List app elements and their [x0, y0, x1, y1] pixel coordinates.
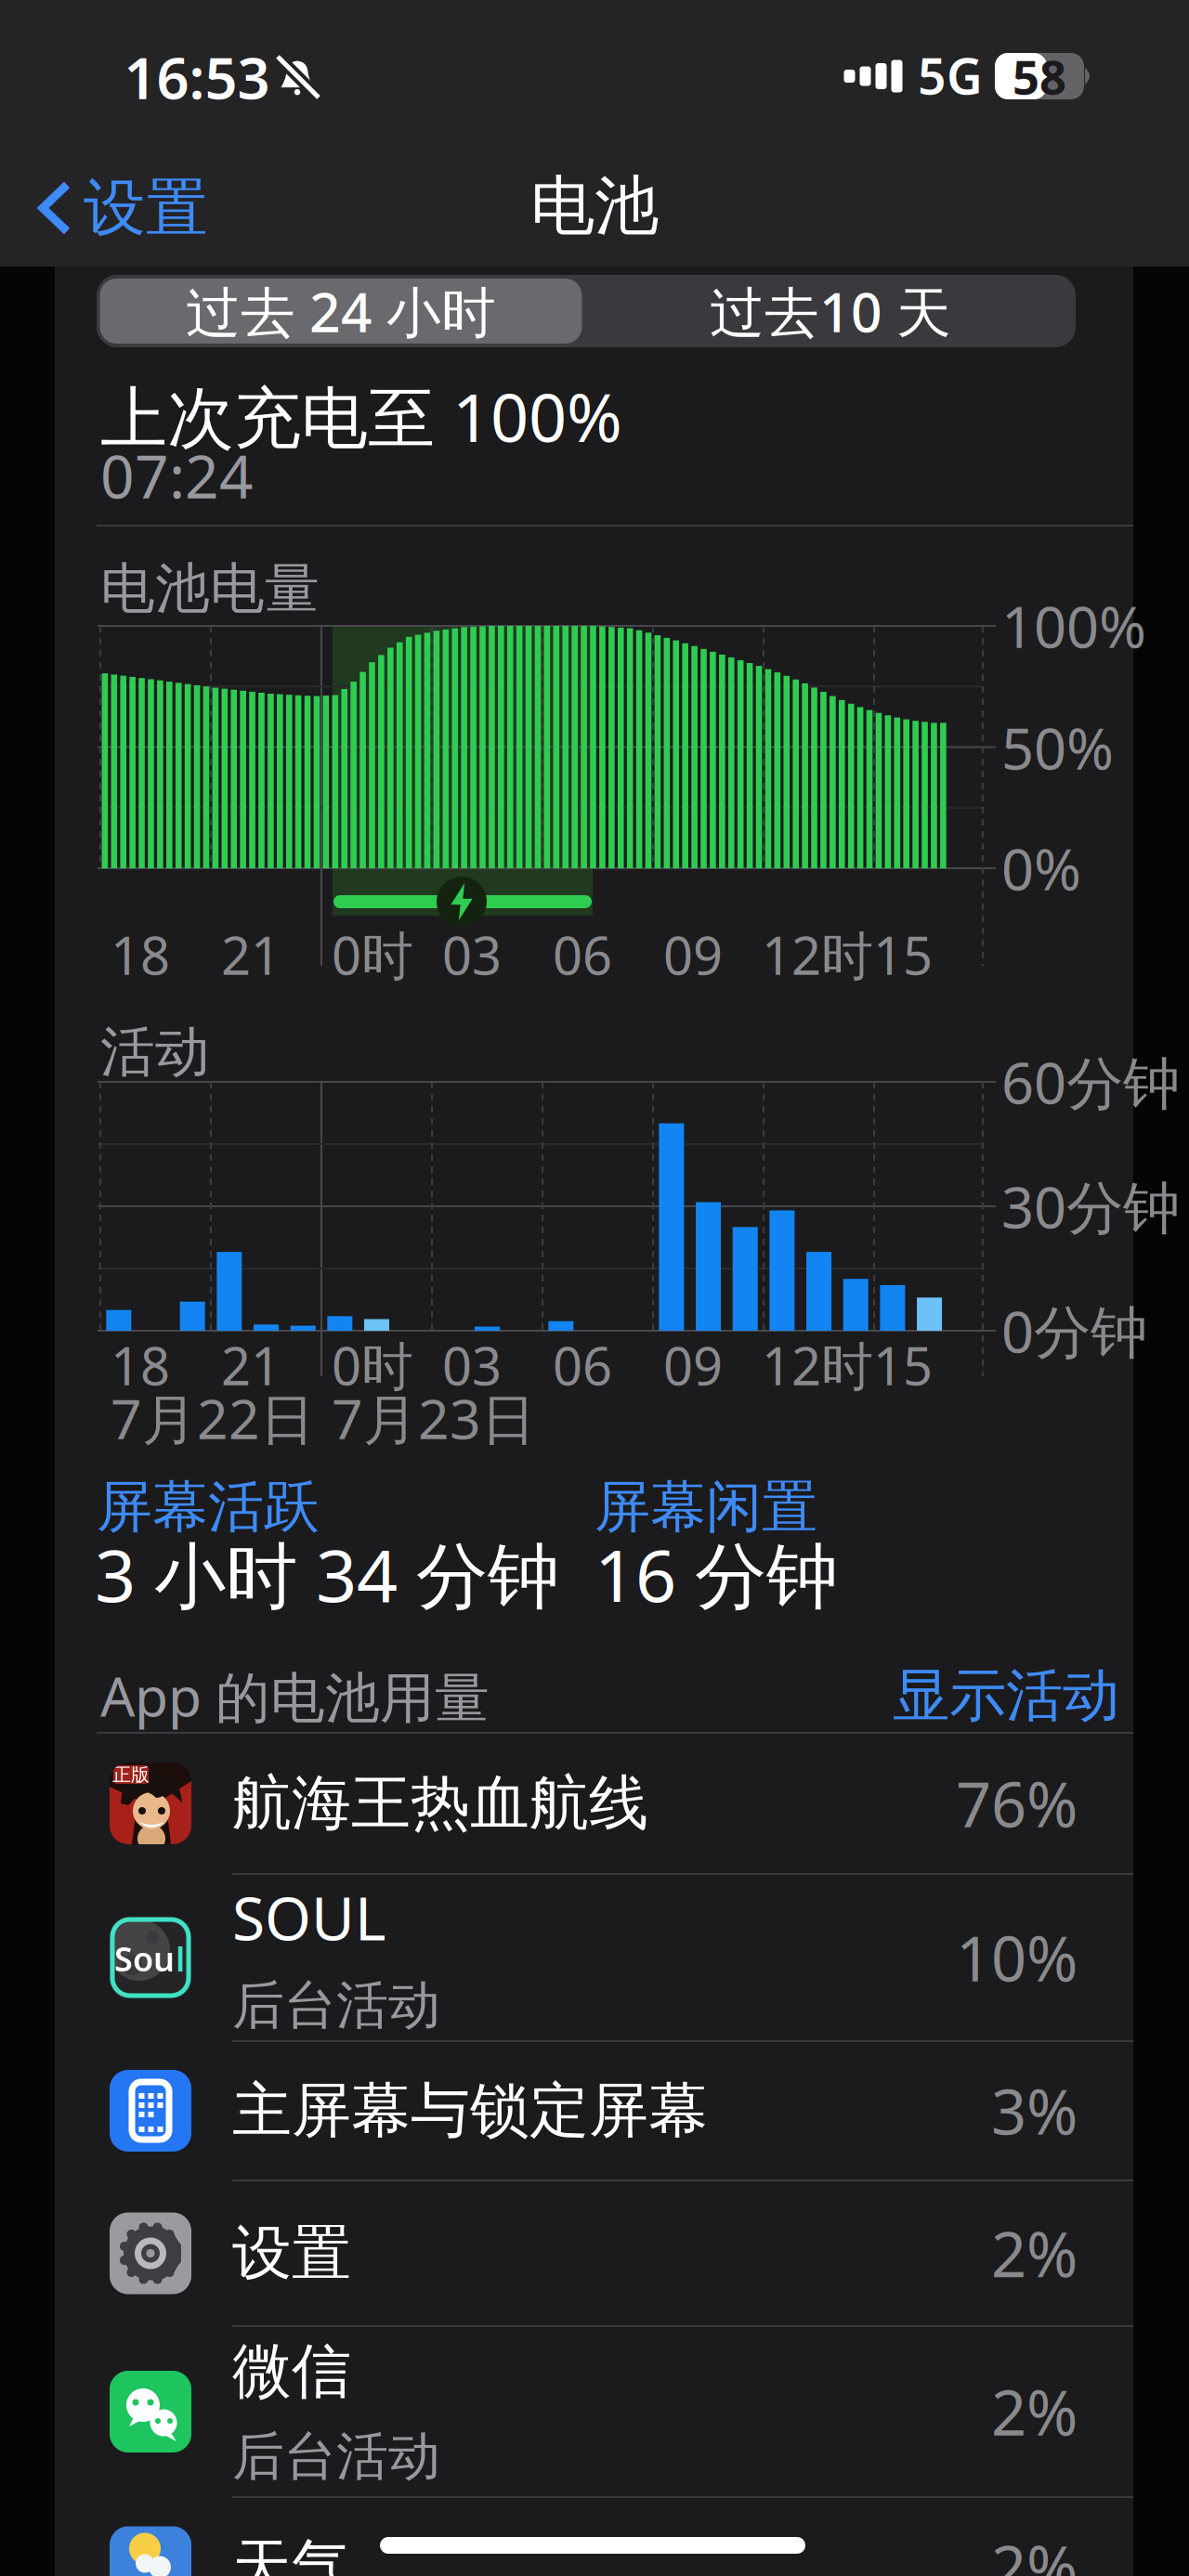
staticText: Sou [114, 1936, 175, 1981]
staticText: 09 [663, 920, 723, 989]
staticText: 上次充电至 100% [100, 372, 622, 460]
staticText: 30分钟 [1001, 1168, 1180, 1244]
staticText: 5G [918, 42, 983, 108]
staticText: 21 [221, 1331, 281, 1400]
staticText: App 的电池用量 [100, 1659, 490, 1732]
button[interactable]: 主屏幕与锁定屏幕 [55, 2041, 1133, 2180]
staticText: 后台活动 [232, 1973, 440, 2037]
staticText: 3% [991, 2070, 1078, 2152]
staticText: 显示活动 [893, 1661, 1119, 1731]
staticText: 06 [553, 1331, 612, 1400]
staticText: 15 [873, 1331, 933, 1400]
button[interactable]: 过去10 天 [598, 279, 1063, 344]
staticText: 10% [956, 1916, 1078, 1999]
button[interactable]: 过去 24 小时 [100, 279, 582, 344]
staticText: 03 [442, 920, 502, 989]
staticText: 15 [873, 920, 933, 989]
staticText: 16 分钟 [594, 1526, 838, 1622]
staticText: 16:53 [124, 39, 270, 115]
staticText: 58 [1013, 45, 1066, 107]
staticText: 活动 [100, 1019, 210, 1086]
staticText: 06 [553, 920, 612, 989]
button[interactable]: 天气 [55, 2497, 1133, 2576]
button[interactable]: 显示活动 [893, 1661, 1119, 1731]
staticText: 微信 [232, 2335, 351, 2408]
button[interactable]: 返回设置 [39, 170, 208, 246]
staticText: 天气 [232, 2531, 351, 2576]
staticText: 7月22日 [111, 1382, 315, 1454]
staticText: 18 [111, 1331, 170, 1400]
staticText: 屏幕闲置 [594, 1473, 817, 1541]
staticText: 设置 [84, 170, 208, 246]
button[interactable]: 正版 [55, 1733, 1133, 1874]
staticText: 12时 [762, 920, 873, 989]
staticText: 电池 [530, 167, 659, 246]
staticText: 09 [663, 1331, 723, 1400]
staticText: 2% [991, 2526, 1078, 2576]
staticText: 0分钟 [1001, 1293, 1147, 1369]
staticText: 设置 [232, 2217, 351, 2290]
staticText: 76% [956, 1762, 1078, 1844]
staticText: l [176, 1936, 185, 1981]
staticText: 航海王热血航线 [232, 1767, 648, 1840]
staticText: 3 小时 34 分钟 [95, 1526, 559, 1622]
staticText: 0% [1001, 830, 1081, 906]
staticText: 2% [991, 2370, 1078, 2453]
staticText: 屏幕活跃 [97, 1473, 320, 1541]
staticText: 03 [442, 1331, 502, 1400]
staticText: 12时 [762, 1331, 873, 1400]
button[interactable]: 微信 [55, 2326, 1133, 2497]
staticText: 21 [221, 920, 281, 989]
staticText: 过去10 天 [710, 275, 951, 347]
staticText: 电池电量 [100, 555, 320, 622]
staticText: 50% [1001, 710, 1114, 785]
staticText: SOUL [232, 1878, 386, 1957]
staticText: 60分钟 [1001, 1044, 1180, 1120]
staticText: 过去 24 小时 [186, 275, 496, 347]
button[interactable]: 设置 [55, 2180, 1133, 2326]
staticText: 正版 [112, 1763, 150, 1786]
staticText: 后台活动 [232, 2425, 440, 2488]
staticText: 0时 [332, 1331, 413, 1400]
staticText: 100% [1001, 588, 1146, 664]
staticText: 主屏幕与锁定屏幕 [232, 2074, 708, 2147]
staticText: 2% [991, 2212, 1078, 2294]
staticText: 18 [111, 920, 170, 989]
staticText: 7月23日 [332, 1382, 536, 1454]
button[interactable]: Sou [55, 1874, 1133, 2041]
staticText: 07:24 [100, 436, 254, 515]
staticText: 0时 [332, 920, 413, 989]
